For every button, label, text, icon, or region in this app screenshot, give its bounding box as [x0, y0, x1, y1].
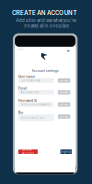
button[interactable]: Update	[58, 102, 70, 107]
button[interactable]: Update	[58, 90, 70, 94]
staticText: Signup	[61, 150, 72, 153]
staticText: User name	[18, 75, 35, 78]
staticText: Password ID	[18, 99, 37, 102]
staticText: Delete account	[22, 148, 34, 155]
staticText: Update	[59, 91, 69, 94]
staticText: Bio	[18, 111, 23, 114]
staticText: Write a short bio	[21, 116, 45, 119]
staticText: CREATE AN ACCOUNT	[12, 9, 77, 16]
staticText: abc@xyz.com	[21, 91, 39, 94]
button[interactable]: Update	[58, 78, 70, 83]
staticText: Update	[59, 103, 69, 106]
staticText: created all in one place	[23, 23, 68, 28]
staticText: Enter a new password	[21, 103, 51, 106]
staticText: Add a bio and see what you've	[16, 18, 76, 23]
staticText: Punitbathegar	[21, 79, 41, 82]
staticText: Email	[18, 87, 27, 90]
staticText: Update	[59, 79, 69, 82]
button[interactable]: Signup	[60, 149, 72, 154]
button[interactable]: Update	[58, 114, 70, 119]
staticText: Update	[59, 115, 69, 118]
button[interactable]: Delete account	[18, 149, 38, 154]
staticText: Account settings	[32, 69, 59, 73]
